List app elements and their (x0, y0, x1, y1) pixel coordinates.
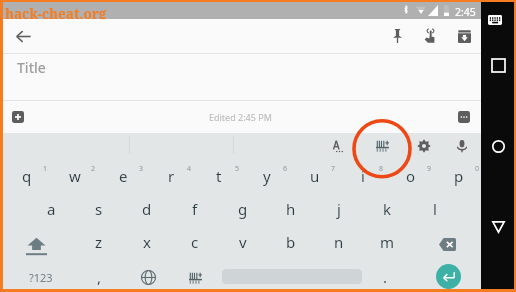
staticText: n (334, 232, 344, 252)
staticText: 0 (475, 164, 480, 174)
staticText: r (168, 166, 175, 186)
button[interactable]: s (75, 193, 123, 225)
button[interactable]: Hide keyboard (481, 6, 509, 34)
button[interactable]: , (75, 261, 123, 292)
button[interactable]: Pin (383, 22, 411, 50)
button[interactable]: h (267, 193, 315, 225)
staticText: z (95, 232, 103, 252)
button[interactable]: l (411, 193, 459, 225)
staticText: x (143, 232, 151, 252)
button[interactable]: a (27, 193, 75, 225)
button[interactable]: Add (5, 104, 31, 130)
button[interactable]: u (291, 160, 339, 192)
button[interactable]: . (361, 261, 409, 292)
staticText: g (238, 199, 248, 219)
button[interactable]: o (387, 160, 435, 192)
button[interactable]: Recents (484, 51, 512, 79)
button[interactable]: i (339, 160, 387, 192)
button[interactable]: j (315, 193, 363, 225)
staticText: t (216, 166, 222, 186)
button[interactable]: Change language (124, 261, 172, 292)
button[interactable]: d (123, 193, 171, 225)
staticText: 3 (139, 164, 144, 174)
staticText: 2 (91, 164, 96, 174)
staticText: 6 (283, 164, 288, 174)
button[interactable]: t (195, 160, 243, 192)
staticText: l (433, 199, 437, 219)
staticText: d (142, 199, 152, 219)
staticText: j (337, 199, 341, 219)
button[interactable]: Keyboard option (368, 133, 396, 158)
button[interactable]: Keyboard option (448, 133, 476, 158)
staticText: e (119, 166, 128, 186)
staticText: 8 (379, 164, 384, 174)
staticText: 9 (427, 164, 432, 174)
button[interactable]: r (147, 160, 195, 192)
button[interactable]: p (435, 160, 483, 192)
button[interactable]: Keyboard option (410, 133, 438, 158)
staticText: m (380, 232, 395, 252)
staticText: y (263, 166, 271, 186)
staticText: Edited 2:45 PM (209, 111, 272, 123)
staticText: s (95, 199, 103, 219)
staticText: ?123 (29, 270, 53, 285)
staticText: p (454, 166, 464, 186)
staticText: . (383, 267, 388, 287)
button[interactable]: q (3, 160, 51, 192)
button[interactable]: g (219, 193, 267, 225)
staticText: w (69, 166, 81, 186)
button[interactable]: k (363, 193, 411, 225)
staticText: Title (17, 58, 46, 77)
button[interactable]: m (363, 226, 411, 258)
staticText: b (286, 232, 296, 252)
staticText: v (239, 232, 247, 252)
button[interactable]: x (123, 226, 171, 258)
button[interactable]: y (243, 160, 291, 192)
staticText: , (97, 267, 102, 287)
button[interactable]: Stickers (171, 261, 219, 292)
button[interactable]: Enter (436, 264, 461, 289)
staticText: o (406, 166, 416, 186)
button[interactable]: z (75, 226, 123, 258)
button[interactable]: Backspace (423, 228, 471, 260)
button[interactable]: Reminder (416, 22, 444, 50)
staticText: f (192, 199, 198, 219)
button[interactable]: w (51, 160, 99, 192)
button[interactable]: Back (484, 213, 512, 241)
staticText: q (22, 166, 32, 186)
staticText: a (47, 199, 56, 219)
button[interactable]: Archive (450, 22, 478, 50)
button[interactable]: Back (9, 22, 37, 50)
button[interactable]: n (315, 226, 363, 258)
button[interactable]: f (171, 193, 219, 225)
staticText: 2:45 (455, 5, 476, 19)
button[interactable]: More options (451, 104, 477, 130)
button[interactable]: c (171, 226, 219, 258)
button[interactable]: ?123 (17, 263, 65, 291)
staticText: h (286, 199, 296, 219)
staticText: 7 (331, 164, 336, 174)
button[interactable]: e (99, 160, 147, 192)
button[interactable]: v (219, 226, 267, 258)
staticText: i (361, 166, 365, 186)
staticText: u (310, 166, 320, 186)
button[interactable]: b (267, 226, 315, 258)
staticText: k (383, 199, 392, 219)
button[interactable]: Keyboard option (322, 133, 350, 158)
staticText: c (191, 232, 199, 252)
staticText: hack-cheat.org (5, 5, 107, 22)
button[interactable]: Shift (12, 230, 60, 262)
staticText: 4 (187, 164, 192, 174)
staticText: 5 (235, 164, 240, 174)
staticText: 1 (43, 164, 48, 174)
button[interactable]: Home (484, 132, 512, 160)
